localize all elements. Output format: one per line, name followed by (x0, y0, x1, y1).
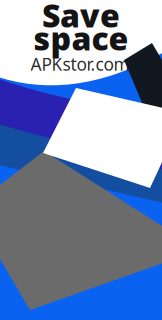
staticText: space (33, 17, 128, 59)
staticText: APKstor.com (30, 52, 129, 75)
staticText: Save (42, 0, 120, 36)
